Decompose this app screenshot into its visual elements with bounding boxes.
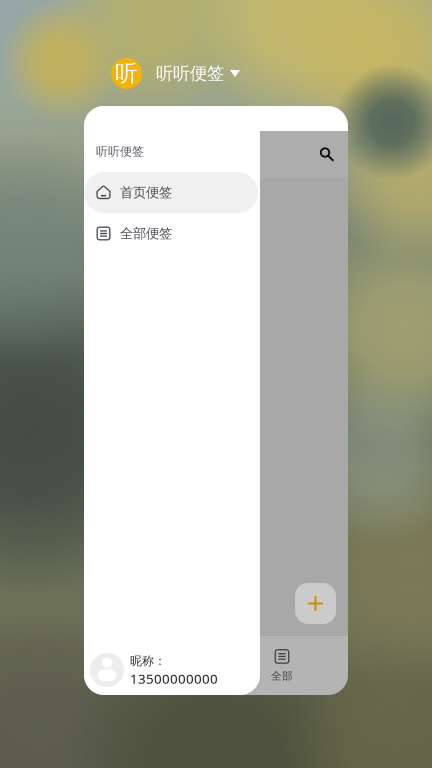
staticText: 全部 [271,669,293,682]
staticText: 首页便签 [120,184,172,201]
staticText: 全部便签 [120,225,172,242]
button[interactable]: 首页 [84,637,216,693]
staticText: 昵称： [130,654,166,668]
button[interactable]: 听 [111,58,240,89]
button[interactable]: 首页便签 [84,172,258,213]
staticText: 首页 [139,669,161,682]
button[interactable]: 全部便签 [84,213,258,254]
button[interactable]: 搜索 [310,137,344,171]
staticText: 听听便签 [156,63,224,84]
staticText: 听听便签 [96,144,144,159]
staticText: 听 [115,60,138,87]
staticText: 13500000000 [130,670,218,687]
button[interactable]: 新建便签 [295,583,336,624]
button[interactable]: 全部 [216,637,348,693]
button[interactable]: 昵称： [84,653,260,687]
